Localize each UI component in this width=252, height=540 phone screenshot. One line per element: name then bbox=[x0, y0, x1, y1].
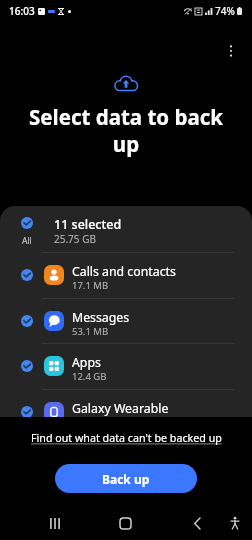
button[interactable]: Back bbox=[178, 505, 215, 540]
button[interactable]: Messages bbox=[0, 298, 252, 343]
button[interactable]: Back up bbox=[55, 464, 197, 493]
staticText: Galaxy Wearable bbox=[72, 400, 169, 417]
staticText: All bbox=[22, 235, 32, 247]
staticText: 16:03 bbox=[9, 4, 35, 18]
button[interactable]: Home bbox=[107, 505, 144, 540]
staticText: Calls and contacts bbox=[72, 263, 176, 280]
button[interactable]: Find out what data can't be backed up bbox=[27, 427, 226, 450]
staticText: 12.4 GB bbox=[72, 370, 107, 383]
staticText: Select data to back up bbox=[18, 103, 234, 158]
button[interactable]: All bbox=[0, 206, 252, 251]
button[interactable]: Apps bbox=[0, 343, 252, 388]
staticText: 25.75 GB bbox=[54, 232, 96, 246]
staticText: 53.1 MB bbox=[72, 325, 109, 338]
staticText: Back up bbox=[102, 471, 150, 487]
staticText: 74% bbox=[215, 4, 235, 18]
button[interactable]: Recent apps bbox=[36, 505, 73, 540]
staticText: 17.1 MB bbox=[72, 279, 109, 292]
staticText: Messages bbox=[72, 309, 130, 326]
staticText: Find out what data can't be backed up bbox=[31, 431, 222, 446]
staticText: Apps bbox=[72, 354, 101, 371]
button[interactable]: Accessibility bbox=[217, 505, 252, 540]
staticText: 11 selected bbox=[54, 216, 122, 233]
button[interactable]: Calls and contacts bbox=[0, 252, 252, 297]
button[interactable]: Galaxy Wearable bbox=[0, 389, 252, 417]
button[interactable]: More options bbox=[219, 39, 243, 63]
